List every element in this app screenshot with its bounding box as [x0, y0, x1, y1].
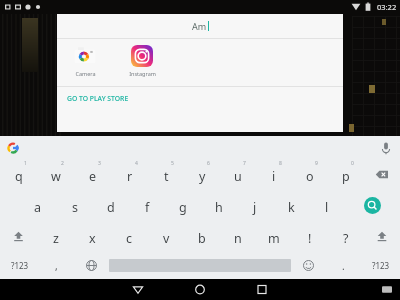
button[interactable]: 4	[111, 159, 148, 190]
staticText: n	[234, 230, 242, 247]
button[interactable]: m	[256, 221, 292, 252]
button[interactable]: n	[220, 221, 256, 252]
button[interactable]: ?	[328, 221, 364, 252]
button[interactable]: b	[184, 221, 220, 252]
staticText: 6	[207, 160, 210, 167]
button[interactable]: GO TO PLAY STORE	[57, 87, 343, 109]
staticText: l	[325, 199, 329, 216]
staticText: g	[179, 199, 187, 216]
button[interactable]: !	[292, 221, 328, 252]
button[interactable]: .	[326, 252, 361, 279]
staticText: 5	[171, 160, 174, 167]
staticText: x	[89, 230, 96, 247]
staticText: Instagram	[129, 70, 156, 77]
button[interactable]: Search	[345, 190, 400, 221]
staticText: y	[199, 168, 206, 185]
button[interactable]: Instagram	[122, 45, 162, 77]
button[interactable]: Emoji	[291, 252, 326, 279]
staticText: t	[164, 168, 169, 185]
staticText: u	[234, 168, 242, 185]
staticText: 1	[24, 160, 27, 167]
button[interactable]: j	[237, 190, 273, 221]
button[interactable]: Google	[6, 141, 20, 155]
button[interactable]: h	[201, 190, 237, 221]
staticText: w	[51, 168, 61, 185]
button[interactable]: 7	[220, 159, 256, 190]
button[interactable]: 2	[37, 159, 74, 190]
staticText: 3	[98, 160, 101, 167]
staticText: a	[34, 199, 42, 216]
button[interactable]: Camera	[65, 45, 105, 77]
button[interactable]: 0	[328, 159, 364, 190]
staticText: GO TO PLAY STORE	[67, 94, 129, 103]
button[interactable]: ?123	[0, 252, 39, 279]
staticText: Am	[192, 20, 207, 32]
button[interactable]: k	[273, 190, 309, 221]
button[interactable]: l	[309, 190, 345, 221]
button[interactable]: 6	[184, 159, 220, 190]
staticText: c	[126, 230, 133, 247]
button[interactable]: Am	[57, 14, 343, 38]
button[interactable]: f	[129, 190, 165, 221]
staticText: s	[72, 199, 78, 216]
button[interactable]: s	[56, 190, 93, 221]
button[interactable]: Shift	[0, 221, 37, 252]
staticText: Camera	[75, 70, 96, 77]
button[interactable]: a	[19, 190, 56, 221]
staticText: j	[253, 199, 257, 216]
button[interactable]: 8	[256, 159, 292, 190]
button[interactable]: ,	[39, 252, 74, 279]
button[interactable]: z	[37, 221, 74, 252]
staticText: d	[107, 199, 115, 216]
staticText: r	[127, 168, 133, 185]
button[interactable]: 1	[0, 159, 37, 190]
staticText: i	[272, 168, 276, 185]
staticText: 4	[135, 160, 138, 167]
staticText: q	[15, 168, 23, 185]
staticText: o	[306, 168, 314, 185]
button[interactable]: 3	[74, 159, 111, 190]
staticText: h	[215, 199, 223, 216]
staticText: .	[342, 259, 345, 273]
staticText: b	[198, 230, 206, 247]
staticText: v	[163, 230, 170, 247]
staticText: 0	[351, 160, 354, 167]
button[interactable]: v	[148, 221, 184, 252]
staticText: ,	[55, 259, 58, 273]
staticText: !	[308, 230, 312, 247]
staticText: p	[342, 168, 350, 185]
staticText: z	[53, 230, 59, 247]
button[interactable]: ?123	[361, 252, 400, 279]
button[interactable]: c	[111, 221, 148, 252]
button[interactable]: Change language	[74, 252, 109, 279]
staticText: 03:22	[377, 2, 397, 12]
button[interactable]: x	[74, 221, 111, 252]
staticText: f	[145, 199, 150, 216]
staticText: 8	[279, 160, 282, 167]
button[interactable]: d	[93, 190, 129, 221]
button[interactable]: 5	[148, 159, 184, 190]
button[interactable]: Backspace	[364, 159, 400, 190]
staticText: e	[89, 168, 97, 185]
staticText: m	[268, 230, 280, 247]
staticText: 2	[61, 160, 64, 167]
staticText: ?123	[372, 260, 390, 271]
staticText: ?123	[11, 260, 29, 271]
button[interactable]: Voice input	[378, 140, 394, 156]
button[interactable]: 9	[292, 159, 328, 190]
staticText: 7	[243, 160, 246, 167]
staticText: 9	[315, 160, 318, 167]
button[interactable]: Shift	[364, 221, 400, 252]
staticText: k	[288, 199, 295, 216]
staticText: ?	[343, 230, 349, 247]
button[interactable]: g	[165, 190, 201, 221]
